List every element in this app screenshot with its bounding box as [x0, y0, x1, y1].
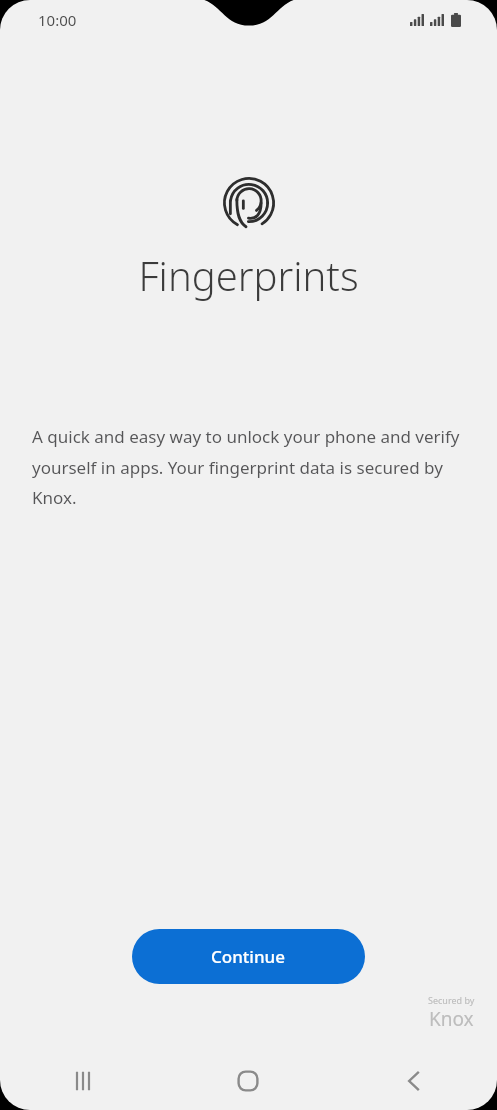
button[interactable]: Back [331, 1052, 497, 1110]
staticText: Knox [429, 1006, 474, 1032]
button[interactable]: Continue [132, 929, 365, 984]
button[interactable]: Home [165, 1052, 331, 1110]
staticText: A quick and easy way to unlock your phon… [32, 425, 468, 509]
staticText: 10:00 [38, 10, 77, 30]
staticText: Continue [211, 945, 286, 968]
staticText: Secured by [428, 994, 475, 1006]
button[interactable]: Recent apps [0, 1052, 165, 1110]
staticText: Fingerprints [138, 248, 359, 302]
